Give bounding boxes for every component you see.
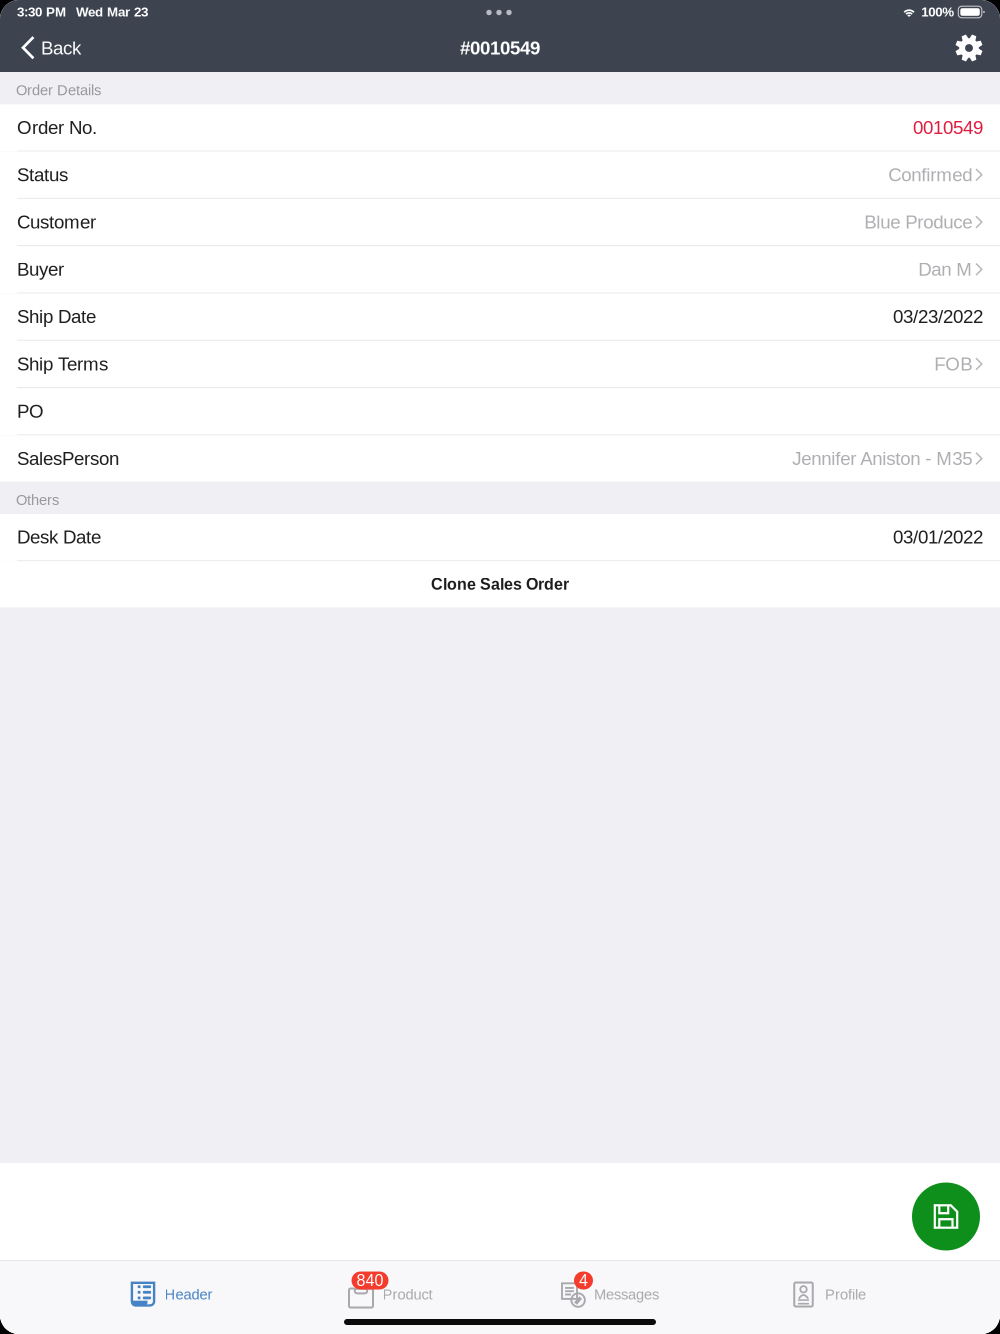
button[interactable]: Header xyxy=(62,1278,281,1310)
staticText: Blue Produce xyxy=(864,212,972,232)
staticText: SalesPerson xyxy=(17,448,119,469)
staticText: Product xyxy=(382,1286,432,1303)
staticText: Ship Date xyxy=(17,306,96,327)
staticText: Others xyxy=(16,492,59,508)
button[interactable]: Desk Date xyxy=(0,514,1000,561)
staticText: 0010549 xyxy=(913,117,983,138)
staticText: Ship Terms xyxy=(17,353,108,374)
staticText: Jennifer Aniston - M35 xyxy=(792,448,972,469)
staticText: Desk Date xyxy=(17,527,101,548)
staticText: FOB xyxy=(934,353,972,374)
button[interactable]: Back xyxy=(0,24,95,72)
staticText: #0010549 xyxy=(460,38,540,58)
staticText: Header xyxy=(164,1286,212,1303)
staticText: Confirmed xyxy=(888,164,972,185)
button[interactable]: Ship Terms xyxy=(0,341,1000,388)
button[interactable]: 840 xyxy=(281,1278,500,1310)
button[interactable]: Customer xyxy=(0,199,1000,246)
staticText: Buyer xyxy=(17,259,64,280)
button[interactable]: PO xyxy=(0,388,1000,435)
staticText: 840 xyxy=(356,1272,383,1289)
staticText: Order No. xyxy=(17,117,97,138)
staticText: Back xyxy=(41,38,81,58)
button[interactable]: Buyer xyxy=(0,246,1000,293)
staticText: Customer xyxy=(17,212,96,232)
staticText: Messages xyxy=(594,1286,659,1303)
button[interactable]: 4 xyxy=(500,1278,719,1310)
staticText: Profile xyxy=(825,1286,866,1303)
staticText: 03/23/2022 xyxy=(893,306,983,327)
button[interactable]: Settings xyxy=(938,24,1000,72)
staticText: 4 xyxy=(579,1272,588,1289)
staticText: 03/01/2022 xyxy=(893,527,983,548)
staticText: PO xyxy=(17,401,44,422)
button[interactable]: Order No. xyxy=(0,104,1000,152)
staticText: Status xyxy=(17,164,68,185)
staticText: Dan M xyxy=(918,259,972,280)
staticText: Wed Mar 23 xyxy=(76,5,148,19)
staticText: 3:30 PM xyxy=(17,5,66,19)
staticText: Order Details xyxy=(16,82,101,98)
button[interactable]: SalesPerson xyxy=(0,435,1000,482)
button[interactable]: Ship Date xyxy=(0,293,1000,341)
staticText: Clone Sales Order xyxy=(431,575,569,593)
button[interactable]: Clone Sales Order xyxy=(0,561,1000,607)
button[interactable]: Profile xyxy=(719,1278,938,1310)
button[interactable]: Status xyxy=(0,152,1000,199)
staticText: 100% xyxy=(921,5,954,19)
button[interactable]: Save xyxy=(907,1177,985,1255)
